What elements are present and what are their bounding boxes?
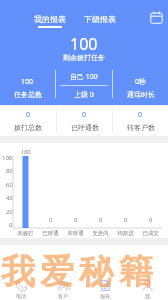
staticText: 我 (145, 293, 150, 299)
button[interactable]: 100 (0, 70, 55, 100)
staticText: 爱 (40, 250, 74, 293)
staticText: 0 (82, 110, 87, 120)
staticText: 100 (21, 148, 31, 155)
staticText: 0 (74, 216, 78, 223)
staticText: 已呼通 (42, 230, 59, 237)
staticText: 通话时长 (127, 90, 155, 99)
staticText: 100 (21, 77, 34, 87)
staticText: 0秒 (135, 77, 147, 87)
staticText: 电话 (16, 293, 26, 299)
staticText: 转客户数 (127, 123, 155, 132)
staticText: 秘 (79, 250, 113, 293)
staticText: 籍 (119, 250, 153, 293)
staticText: 未呼通 (67, 230, 84, 237)
button[interactable]: 客户 (42, 245, 84, 300)
staticText: 100 (70, 33, 98, 55)
button[interactable]: 下级报表 (84, 0, 116, 28)
staticText: 拨打总数 (14, 123, 42, 132)
staticText: 100 (2, 154, 13, 162)
staticText: 0 (26, 110, 31, 120)
staticText: 待跟进 (117, 230, 134, 237)
staticText: 80 (6, 167, 13, 175)
staticText: 20 (6, 208, 13, 216)
staticText: 我的报表 (34, 14, 66, 24)
staticText: 任务总数 (14, 90, 42, 99)
button[interactable]: 0秒 (113, 70, 168, 100)
staticText: 未拨打 (17, 230, 34, 237)
staticText: 0 (49, 216, 53, 223)
staticText: 60 (6, 181, 13, 189)
button[interactable]: 自己 100 (56, 70, 112, 100)
staticText: 无意向 (92, 230, 109, 237)
staticText: 自己 100 (70, 72, 98, 82)
button[interactable]: 0 (113, 106, 168, 136)
staticText: 40 (6, 194, 13, 202)
staticText: 我 (1, 250, 35, 293)
staticText: 客户 (58, 293, 68, 299)
staticText: 0 (124, 216, 128, 223)
button[interactable]: 我的报表 (34, 0, 66, 28)
staticText: 已呼通数 (71, 123, 99, 132)
button[interactable]: 报表 (84, 245, 126, 300)
button[interactable]: 我 (126, 245, 168, 300)
button[interactable]: 电话 (0, 245, 42, 300)
staticText: 上级 0 (74, 90, 94, 100)
staticText: 已成交 (142, 230, 159, 237)
staticText: 0 (149, 216, 153, 223)
staticText: 报表 (100, 293, 110, 299)
button[interactable]: 0 (0, 106, 56, 136)
staticText: 剩余拨打任务 (63, 53, 105, 62)
staticText: 0 (138, 110, 143, 120)
staticText: 下级报表 (84, 14, 116, 24)
staticText: 0 (9, 221, 13, 229)
button[interactable]: 0 (57, 106, 112, 136)
staticText: 0 (99, 216, 103, 223)
button[interactable]: Calendar (150, 11, 163, 24)
